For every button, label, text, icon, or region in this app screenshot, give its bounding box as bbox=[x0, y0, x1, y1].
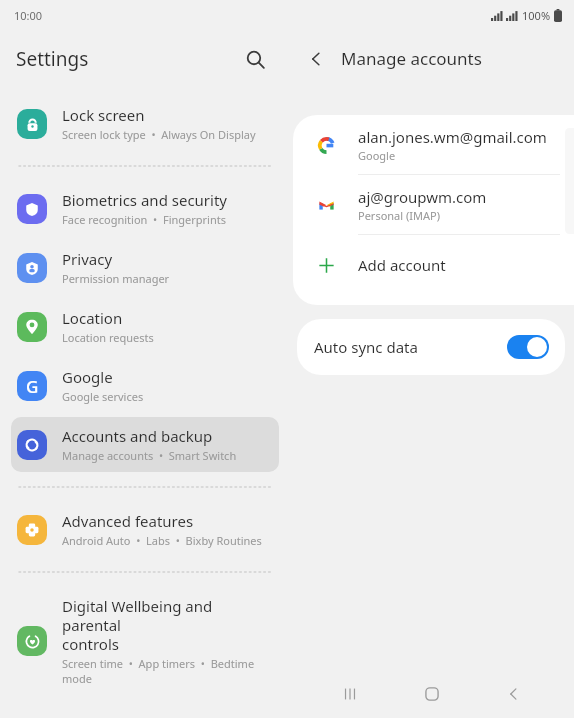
button[interactable]: Location bbox=[11, 299, 279, 354]
button[interactable]: Back bbox=[299, 42, 333, 76]
button[interactable]: G bbox=[11, 358, 279, 413]
staticText: Permission manager bbox=[62, 271, 170, 286]
button[interactable]: Auto sync data bbox=[297, 319, 565, 375]
staticText: Manage accounts • Smart Switch bbox=[62, 448, 237, 463]
staticText: Accounts and backup bbox=[62, 426, 213, 446]
staticText: 10:00 bbox=[14, 8, 43, 23]
staticText: Privacy bbox=[62, 249, 113, 269]
staticText: Google bbox=[358, 148, 396, 163]
button[interactable]: alan.jones.wm@gmail.com bbox=[293, 115, 574, 174]
staticText: Settings bbox=[16, 46, 89, 72]
button[interactable]: Home bbox=[410, 672, 454, 716]
staticText: Add account bbox=[358, 255, 446, 275]
staticText: Android Auto • Labs • Bixby Routines bbox=[62, 533, 262, 548]
button[interactable]: Privacy bbox=[11, 240, 279, 295]
button[interactable]: Recents bbox=[328, 672, 372, 716]
button[interactable]: Accounts and backup bbox=[11, 417, 279, 472]
staticText: G bbox=[26, 375, 39, 398]
staticText: Advanced features bbox=[62, 511, 194, 531]
button[interactable]: Advanced features bbox=[11, 502, 279, 557]
button[interactable]: Digital Wellbeing and parental controls bbox=[11, 587, 279, 695]
staticText: Screen time • App timers • Bedtime mode bbox=[62, 656, 271, 686]
staticText: alan.jones.wm@gmail.com bbox=[358, 127, 547, 147]
button[interactable]: aj@groupwm.com bbox=[293, 175, 574, 234]
button[interactable]: Auto sync data toggle bbox=[507, 335, 549, 359]
staticText: Auto sync data bbox=[314, 337, 507, 357]
staticText: Biometrics and security bbox=[62, 190, 228, 210]
staticText: Manage accounts bbox=[341, 47, 482, 70]
staticText: Location bbox=[62, 308, 123, 328]
staticText: Digital Wellbeing and parental controls bbox=[62, 596, 271, 654]
staticText: Personal (IMAP) bbox=[358, 208, 440, 223]
staticText: Location requests bbox=[62, 330, 154, 345]
button[interactable]: Add account bbox=[293, 235, 574, 305]
button[interactable]: Back bbox=[492, 672, 536, 716]
staticText: Screen lock type • Always On Display bbox=[62, 127, 256, 142]
staticText: Face recognition • Fingerprints bbox=[62, 212, 226, 227]
staticText: Lock screen bbox=[62, 105, 145, 125]
button[interactable]: Biometrics and security bbox=[11, 181, 279, 236]
staticText: 100% bbox=[522, 8, 551, 23]
staticText: Google services bbox=[62, 389, 144, 404]
staticText: aj@groupwm.com bbox=[358, 187, 487, 207]
staticText: Google bbox=[62, 367, 113, 387]
button[interactable]: Search bbox=[238, 42, 272, 76]
button[interactable]: Lock screen bbox=[11, 96, 279, 151]
